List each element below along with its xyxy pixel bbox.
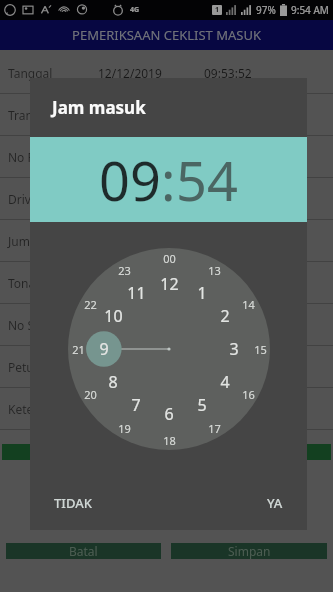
staticText: Jumlah [8, 233, 48, 249]
staticText: 22 [84, 297, 97, 312]
staticText: Jam masuk [52, 96, 146, 119]
staticText: 4 [220, 371, 230, 393]
staticText: 18 [163, 433, 176, 448]
staticText: Keterangan [8, 401, 74, 417]
staticText: 11 [127, 282, 146, 304]
staticText: PEMERIKSAAN CEKLIST MASUK [72, 26, 261, 44]
staticText: 13 [208, 263, 221, 278]
staticText: : [161, 143, 176, 217]
button[interactable]: 54 [176, 143, 238, 217]
button[interactable]: YA [261, 488, 289, 518]
staticText: 1 [215, 5, 220, 15]
staticText: 9 [99, 338, 109, 360]
staticText: 97% [256, 3, 276, 17]
staticText: 4G [130, 5, 140, 15]
button[interactable]: Batal [6, 543, 161, 559]
staticText: 8 [108, 371, 118, 393]
staticText: 9:54 AM [291, 3, 329, 17]
staticText: 15 [254, 342, 267, 357]
staticText: 14 [242, 297, 255, 312]
staticText: Transaksi [8, 107, 61, 123]
staticText: 17 [208, 421, 221, 436]
staticText: YA [267, 494, 283, 512]
staticText: Tanggal [8, 65, 53, 81]
button[interactable]: 09 [99, 143, 161, 217]
staticText: 1 [197, 282, 207, 304]
staticText: 16 [242, 387, 255, 402]
staticText: 23 [118, 263, 131, 278]
staticText: 6 [164, 403, 174, 425]
staticText: Batal [69, 543, 98, 559]
staticText: 21 [72, 342, 85, 357]
staticText: No Polisi [8, 149, 58, 165]
staticText: 20 [84, 387, 97, 402]
button[interactable]: Ya [168, 444, 331, 460]
staticText: Simpan [228, 543, 271, 559]
staticText: 19 [118, 421, 131, 436]
button[interactable]: Tidak [2, 444, 164, 460]
staticText: TIDAK [54, 494, 92, 512]
staticText: 7 [131, 394, 141, 416]
staticText: 09:53:52 [204, 65, 252, 81]
staticText: Driver [8, 191, 43, 207]
button[interactable]: Simpan [171, 543, 327, 559]
staticText: 10 [104, 305, 123, 327]
staticText: 12 [160, 273, 179, 295]
staticText: 2 [220, 305, 230, 327]
staticText: Tonase [8, 275, 48, 291]
staticText: 12/12/2019 [98, 65, 162, 81]
button[interactable]: TIDAK [48, 488, 98, 518]
staticText: 3 [229, 338, 239, 360]
staticText: No Segel [8, 317, 59, 333]
staticText: 00 [163, 251, 176, 266]
staticText: Petugas [8, 359, 54, 375]
staticText: 5 [197, 394, 207, 416]
